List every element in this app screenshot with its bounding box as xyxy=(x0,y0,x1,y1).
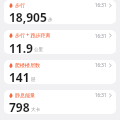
staticText: 141 xyxy=(9,69,30,84)
button[interactable]: 静息能量 xyxy=(4,90,116,114)
staticText: 11.9 xyxy=(9,40,33,54)
other: Open details xyxy=(109,63,112,68)
other: Open details xyxy=(109,33,112,38)
staticText: 层 xyxy=(31,77,36,83)
button[interactable]: 步行 + 跑步距离 xyxy=(4,30,116,54)
staticText: 16:31 xyxy=(95,2,107,8)
staticText: 步 xyxy=(48,17,53,23)
staticText: 大卡 xyxy=(31,107,40,113)
staticText: 798 xyxy=(9,99,30,114)
staticText: 16:31 xyxy=(95,92,107,98)
other: Open details xyxy=(109,93,112,98)
staticText: 步行 xyxy=(15,2,25,8)
staticText: 18,905 xyxy=(9,9,47,24)
button[interactable]: 步行 xyxy=(4,0,116,24)
staticText: 16:31 xyxy=(95,62,107,68)
staticText: 16:31 xyxy=(95,33,107,39)
button[interactable]: 爬楼楼层数 xyxy=(4,60,116,84)
other: Open details xyxy=(109,3,112,8)
staticText: 爬楼楼层数 xyxy=(15,62,40,68)
staticText: 步行 + 跑步距离 xyxy=(15,32,51,39)
staticText: 静息能量 xyxy=(15,92,35,98)
staticText: 公里 xyxy=(34,47,43,53)
